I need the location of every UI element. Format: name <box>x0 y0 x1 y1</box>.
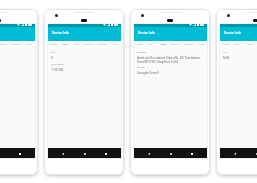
staticText: N/A <box>223 55 230 60</box>
staticText: RENDERER <box>137 51 147 54</box>
button[interactable]: DISPLAY <box>0 41 10 47</box>
button[interactable]: CPU <box>59 41 71 47</box>
staticText: Android Emulator OpenGL ES Translator (I… <box>137 55 201 64</box>
staticText: CPU <box>63 43 68 46</box>
button[interactable]: DISPLAY <box>83 41 96 47</box>
staticText: SYSTEM <box>135 43 144 46</box>
staticText: BATTERY <box>184 43 193 46</box>
staticText: RAM <box>113 43 118 46</box>
staticText: Google (Intel) <box>137 70 159 75</box>
button[interactable]: SYSTEM <box>133 41 145 47</box>
staticText: 1.95 GB <box>51 67 64 72</box>
button[interactable]: RAM <box>109 41 122 47</box>
button[interactable]: DISPLAY <box>169 41 182 47</box>
staticText: BATTERY <box>98 43 107 46</box>
button[interactable]: RAM <box>23 41 36 47</box>
button[interactable]: Home <box>83 152 87 156</box>
button[interactable]: Recents <box>190 152 194 156</box>
staticText: TYPE <box>51 51 56 54</box>
staticText: SYSTEM <box>221 43 230 46</box>
button[interactable]: BATTERY <box>96 41 109 47</box>
staticText: DISPLAY <box>85 43 94 46</box>
staticText: VENDOR <box>137 66 145 69</box>
button[interactable]: BATTERY <box>10 41 23 47</box>
staticText: CPU <box>149 43 154 46</box>
button[interactable]: GPU <box>71 41 83 47</box>
staticText: Device Info <box>138 31 156 35</box>
staticText: BATTERY <box>12 43 21 46</box>
button[interactable]: RAM <box>195 41 208 47</box>
staticText: CPU <box>235 43 240 46</box>
button[interactable]: VENDOR <box>137 66 208 75</box>
staticText: 0 <box>51 55 53 60</box>
button[interactable]: Back <box>233 152 237 156</box>
button[interactable]: Back <box>61 152 65 156</box>
button[interactable]: Home <box>255 152 257 156</box>
button[interactable]: GPU <box>157 41 169 47</box>
staticText: TYPE <box>223 51 228 54</box>
staticText: GPU <box>75 43 80 46</box>
staticText: SYSTEM <box>49 43 58 46</box>
staticText: DISPLAY <box>171 43 180 46</box>
button[interactable]: TYPE <box>51 51 122 60</box>
staticText: RAM <box>27 43 32 46</box>
button[interactable]: Recents <box>104 152 108 156</box>
staticText: DISPLAY <box>0 43 8 46</box>
staticText: Device Info <box>224 31 242 35</box>
button[interactable]: Back <box>147 152 151 156</box>
button[interactable]: CPU <box>145 41 157 47</box>
button[interactable]: GPU <box>243 41 255 47</box>
button[interactable]: CPU <box>231 41 243 47</box>
staticText: TOTAL MEMORY <box>51 63 65 66</box>
button[interactable]: Recents <box>18 152 22 156</box>
button[interactable]: Home <box>169 152 173 156</box>
button[interactable]: TYPE <box>223 51 257 60</box>
button[interactable]: RENDERER <box>137 51 208 64</box>
staticText: RAM <box>199 43 204 46</box>
button[interactable]: SYSTEM <box>47 41 59 47</box>
button[interactable]: BATTERY <box>182 41 195 47</box>
button[interactable]: SYSTEM <box>219 41 231 47</box>
staticText: GPU <box>247 43 252 46</box>
staticText: Device Info <box>52 31 70 35</box>
button[interactable]: TOTAL MEMORY <box>51 63 122 72</box>
staticText: GPU <box>161 43 166 46</box>
